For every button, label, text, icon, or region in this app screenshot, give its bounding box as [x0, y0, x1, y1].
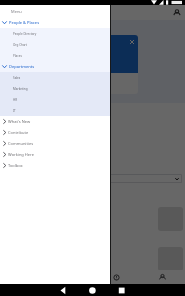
button[interactable]: What's New [0, 116, 111, 127]
button[interactable]: Close [127, 37, 136, 46]
staticText: Places [13, 54, 22, 58]
button[interactable]: Communities [0, 138, 111, 149]
button[interactable]: HR [0, 94, 111, 105]
button[interactable]: Account [170, 6, 183, 19]
button[interactable]: Marketing [0, 83, 111, 94]
button[interactable]: Sales [0, 72, 111, 83]
staticText: HR [13, 98, 18, 102]
button[interactable]: People & Places [0, 17, 111, 28]
staticText: Sales [13, 76, 21, 80]
button[interactable]: CULTURE [4, 201, 183, 239]
button[interactable]: Places [0, 50, 111, 61]
button[interactable]: Org Chart [0, 39, 111, 50]
staticText: People Directory [13, 32, 37, 36]
button[interactable]: IT [0, 105, 111, 116]
button[interactable]: Contribute [0, 127, 111, 138]
staticText: What's New [8, 119, 31, 124]
staticText: People & Places [9, 20, 40, 25]
button[interactable]: Working Here [0, 149, 111, 160]
button[interactable]: Profile [139, 270, 185, 284]
staticText: Communities [8, 141, 34, 146]
staticText: Working Here [8, 152, 34, 157]
button[interactable]: Notifications [93, 270, 139, 284]
staticText: Org Chart [13, 43, 27, 47]
staticText: Welcome to the intranet [11, 77, 48, 81]
staticText: Menu [11, 9, 22, 14]
button[interactable]: Toolbox [0, 160, 111, 171]
button[interactable]: COMMUNITY [4, 241, 183, 279]
button[interactable]: Departments [0, 61, 111, 72]
staticText: Toolbox [8, 163, 23, 168]
button[interactable]: People Directory [0, 28, 111, 39]
staticText: Marketing [13, 87, 28, 91]
staticText: Departments [9, 64, 35, 69]
staticText: IT [13, 109, 16, 113]
button[interactable]: All topics [4, 174, 182, 183]
staticText: Contribute [8, 130, 29, 135]
button[interactable]: Close [8, 35, 138, 94]
